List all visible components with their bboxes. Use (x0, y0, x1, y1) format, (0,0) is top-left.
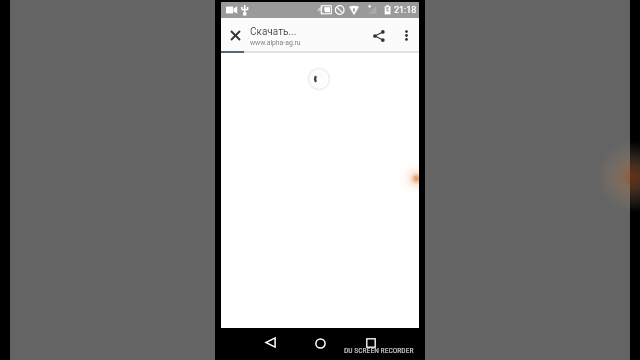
button[interactable]: Share (369, 18, 395, 49)
button[interactable]: Home (306, 328, 334, 360)
staticText: 21:18 (394, 5, 417, 16)
button[interactable]: Close (221, 18, 249, 49)
button[interactable]: Recents (356, 328, 384, 360)
staticText: www.alpha-ag.ru (250, 39, 301, 47)
button[interactable]: More options (395, 18, 419, 49)
staticText: Скачать... (250, 26, 297, 38)
staticText: DU SCREEN RECORDER (344, 346, 414, 355)
button[interactable]: Back (256, 328, 284, 360)
